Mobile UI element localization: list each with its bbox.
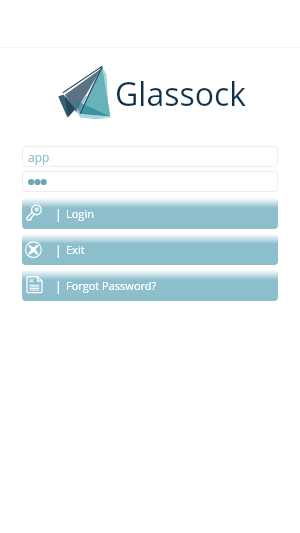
button[interactable]: |	[22, 270, 278, 301]
staticText: Glassock	[115, 72, 247, 116]
button[interactable]: |	[22, 234, 278, 265]
staticText: app	[28, 149, 50, 165]
button[interactable]: Username	[22, 146, 278, 167]
staticText: Login	[66, 206, 94, 221]
button[interactable]: |	[22, 198, 278, 229]
staticText: Forgot Password?	[66, 278, 157, 293]
staticText: |	[55, 278, 62, 294]
staticText: |	[55, 242, 62, 258]
staticText: Exit	[66, 242, 85, 257]
button[interactable]: Password	[22, 171, 278, 192]
staticText: |	[55, 206, 62, 222]
